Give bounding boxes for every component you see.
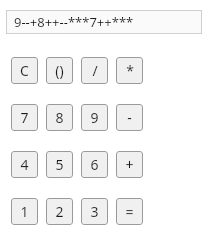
staticText: 7 (20, 108, 29, 127)
button[interactable]: Equals (116, 198, 143, 225)
button[interactable]: Multiply (116, 57, 143, 84)
staticText: 1 (20, 202, 29, 221)
staticText: C (20, 61, 29, 80)
staticText: * (126, 61, 134, 80)
button[interactable]: Four (11, 151, 38, 178)
button[interactable]: Seven (11, 104, 38, 131)
button[interactable]: Three (81, 198, 108, 225)
button[interactable]: Six (81, 151, 108, 178)
staticText: - (127, 108, 132, 127)
button[interactable]: One (11, 198, 38, 225)
staticText: = (125, 202, 134, 221)
staticText: 9 (90, 108, 99, 127)
staticText: () (55, 61, 64, 80)
staticText: 2 (55, 202, 64, 221)
staticText: 8 (55, 108, 64, 127)
button[interactable]: Nine (81, 104, 108, 131)
staticText: 5 (55, 155, 64, 174)
button[interactable]: Minus (116, 104, 143, 131)
staticText: 9--+8++--***7++*** (14, 13, 134, 31)
button[interactable]: Divide (81, 57, 108, 84)
staticText: 3 (90, 202, 99, 221)
staticText: 6 (90, 155, 99, 174)
staticText: 4 (20, 155, 29, 174)
button[interactable]: Five (46, 151, 73, 178)
button[interactable]: Two (46, 198, 73, 225)
staticText: + (125, 155, 134, 174)
button[interactable]: Parentheses (46, 57, 73, 84)
button[interactable]: 9--+8++--***7++*** (6, 10, 202, 34)
button[interactable]: Eight (46, 104, 73, 131)
button[interactable]: Clear (11, 57, 38, 84)
button[interactable]: Plus (116, 151, 143, 178)
staticText: / (92, 61, 98, 80)
